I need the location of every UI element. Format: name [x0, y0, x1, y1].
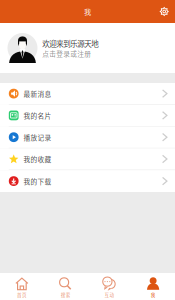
staticText: 搜索 — [61, 291, 71, 298]
button[interactable]: 我的收藏 — [0, 148, 175, 170]
staticText: 最新消息 — [23, 89, 51, 99]
staticText: 我 — [151, 291, 156, 298]
button[interactable]: 搜索 — [44, 272, 88, 300]
staticText: 欢迎来到乐源天地 — [42, 38, 98, 49]
staticText: 我的名片 — [23, 111, 51, 120]
button[interactable]: 我的名片 — [0, 105, 175, 127]
button[interactable]: 首页 — [0, 272, 44, 300]
staticText: 我的收藏 — [23, 154, 51, 164]
button[interactable]: 欢迎来到乐源天地 — [0, 23, 175, 73]
staticText: 播放记录 — [23, 133, 51, 142]
button[interactable]: 我的下载 — [0, 170, 175, 192]
button[interactable]: 我 — [131, 272, 175, 300]
button[interactable]: 最新消息 — [0, 83, 175, 105]
staticText: 我 — [84, 6, 91, 17]
staticText: 首页 — [17, 291, 27, 298]
staticText: 互动 — [104, 291, 114, 298]
button[interactable]: Settings — [160, 7, 175, 16]
staticText: 我的下载 — [23, 176, 51, 186]
staticText: 点击登录或注册 — [42, 49, 91, 58]
button[interactable]: 互动 — [87, 272, 131, 300]
button[interactable]: 播放记录 — [0, 127, 175, 148]
